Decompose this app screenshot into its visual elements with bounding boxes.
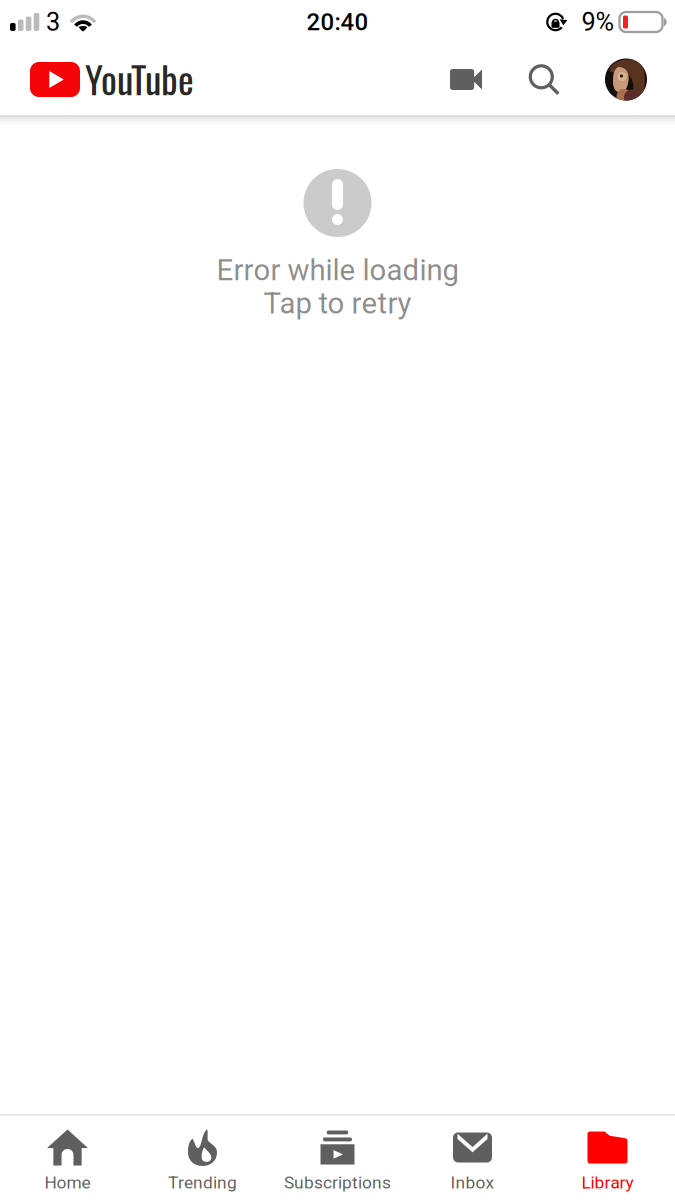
staticText: Home xyxy=(44,1172,90,1193)
button[interactable]: Subscriptions xyxy=(270,1115,405,1200)
staticText: 3 xyxy=(46,7,60,37)
staticText: Inbox xyxy=(450,1172,494,1193)
staticText: YouTube xyxy=(85,51,194,106)
button[interactable]: Account xyxy=(577,51,675,107)
staticText: Subscriptions xyxy=(284,1172,391,1193)
button[interactable]: Inbox xyxy=(405,1115,540,1200)
staticText: Library xyxy=(581,1172,633,1193)
button[interactable]: Create xyxy=(421,51,511,107)
button[interactable]: Home xyxy=(0,1115,135,1200)
staticText: Trending xyxy=(168,1172,237,1193)
button[interactable]: Search xyxy=(511,51,577,107)
button[interactable]: Library xyxy=(540,1115,675,1200)
button[interactable]: YouTube xyxy=(30,41,194,118)
staticText: Error while loading xyxy=(216,253,458,287)
staticText: 20:40 xyxy=(306,8,368,36)
staticText: Tap to retry xyxy=(263,286,411,321)
button[interactable]: Trending xyxy=(135,1115,270,1200)
staticText: 9% xyxy=(581,7,614,37)
button[interactable]: Error while loading xyxy=(0,125,675,1114)
